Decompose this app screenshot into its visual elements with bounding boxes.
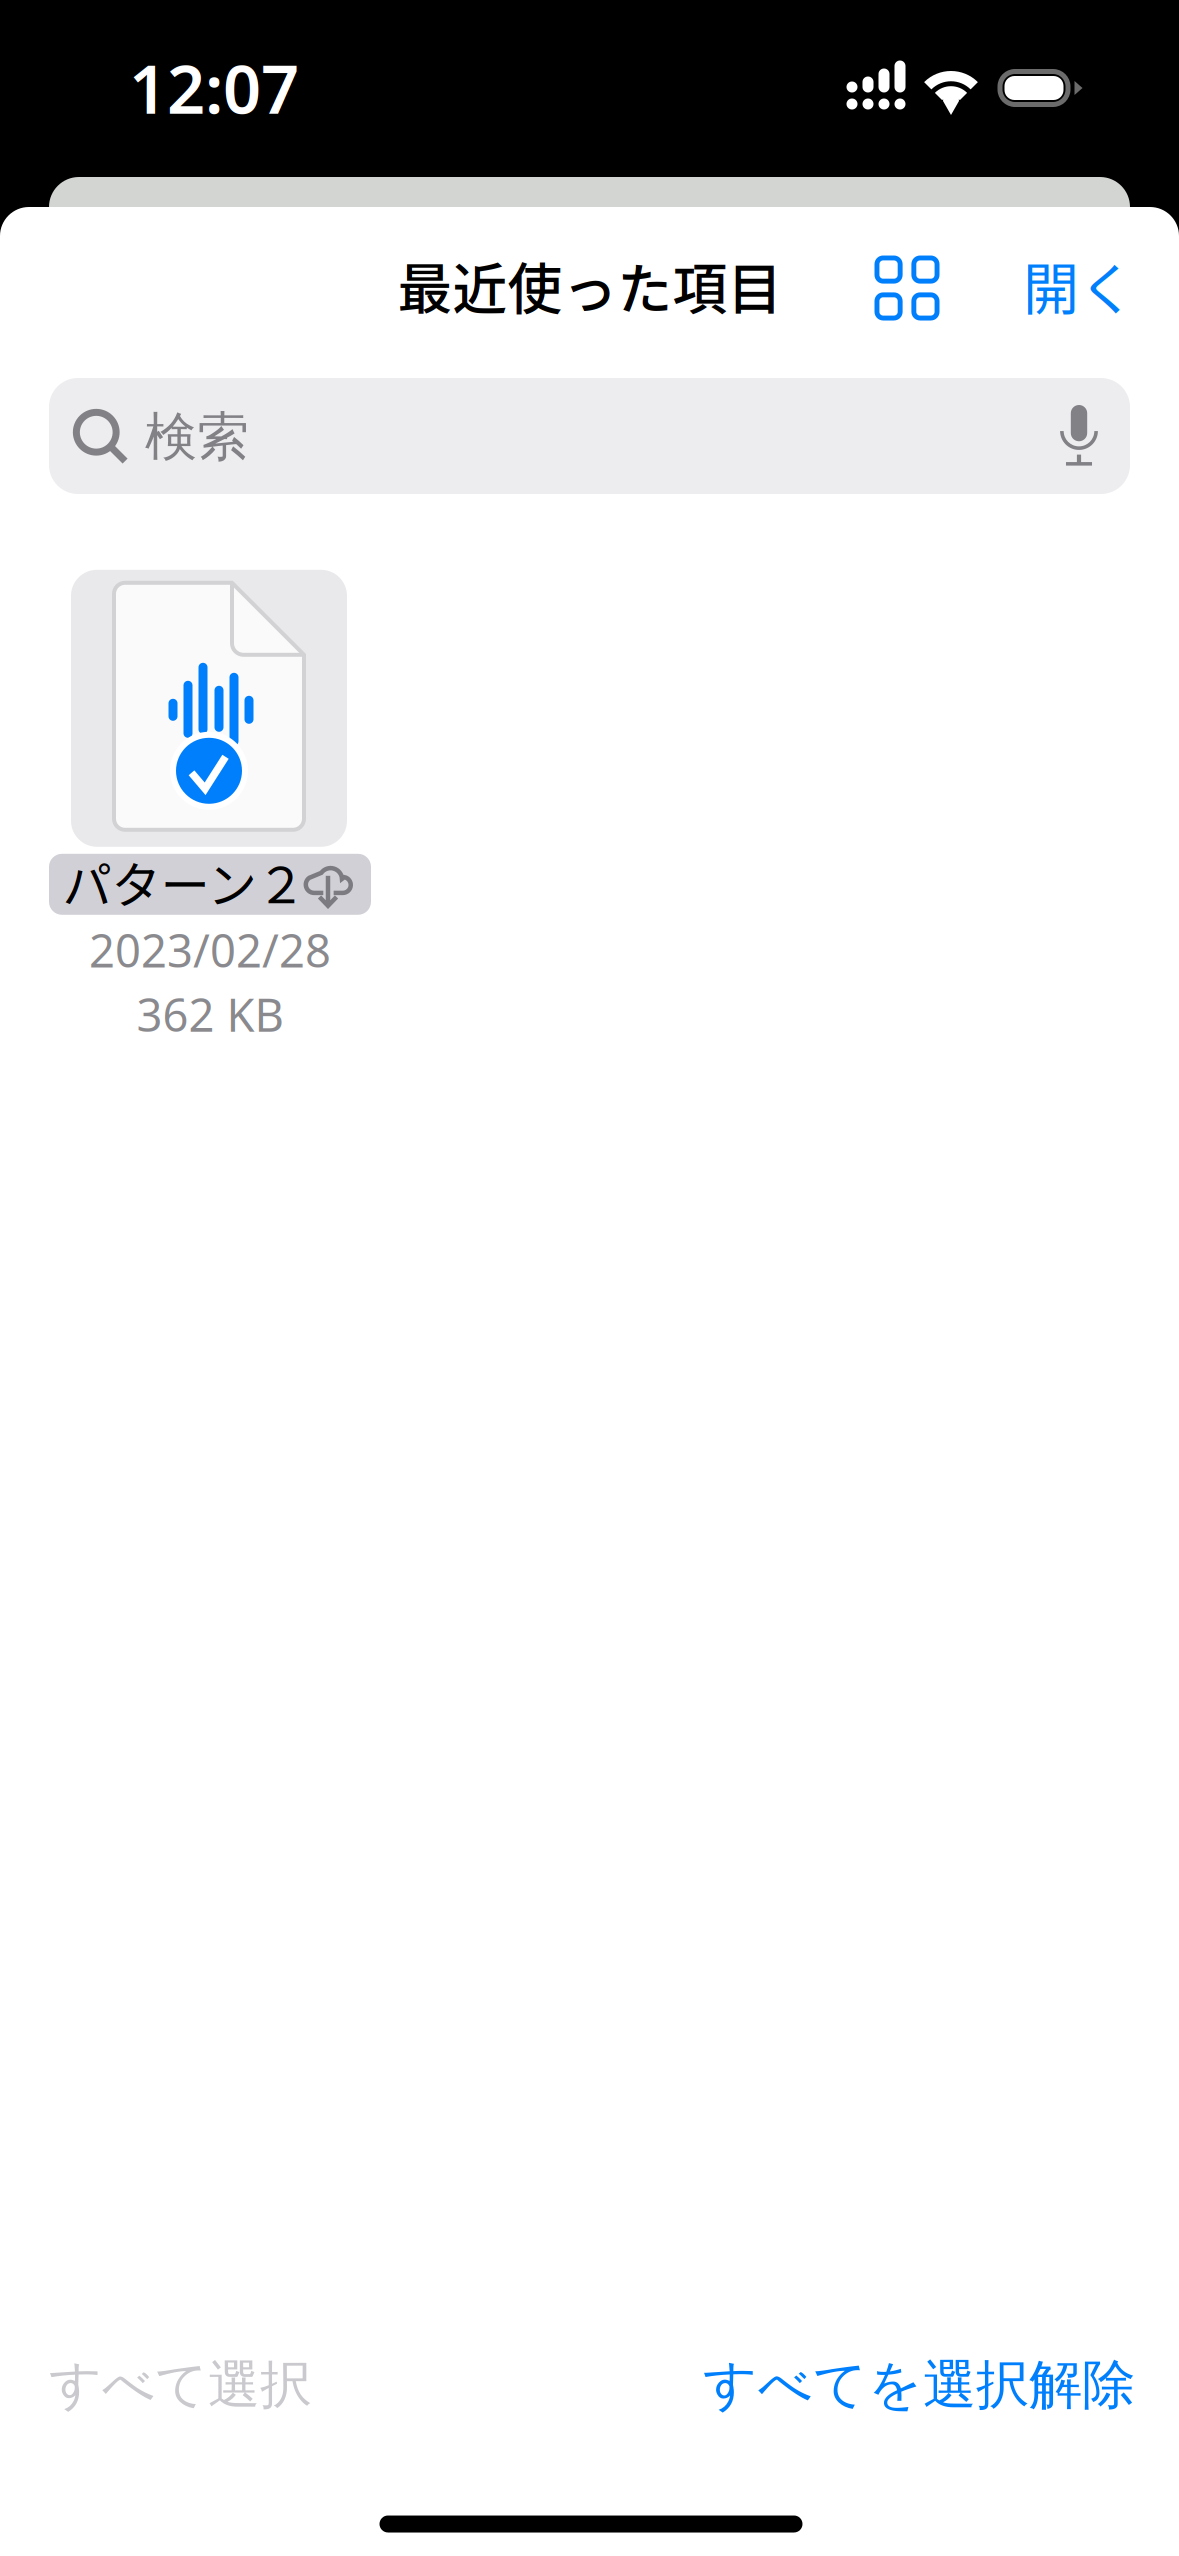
staticText: 最近使った項目 [397,245,782,325]
button[interactable]: 検索 [49,378,1130,494]
button[interactable]: パターン２ [49,570,371,1044]
staticText: 検索 [145,405,249,469]
staticText: 362 KB [136,984,283,1044]
button[interactable]: すべて選択 [49,2330,369,2440]
staticText: 2023/02/28 [89,920,331,980]
button[interactable]: Icon view [852,233,962,343]
staticText: パターン２ [62,846,305,917]
staticText: すべてを選択解除 [703,2352,1135,2418]
staticText: 開く [1023,244,1135,326]
staticText: 12:07 [129,44,299,132]
button[interactable]: 開く [1014,230,1144,340]
staticText: すべて選択 [49,2353,312,2417]
button[interactable]: すべてを選択解除 [675,2330,1135,2440]
